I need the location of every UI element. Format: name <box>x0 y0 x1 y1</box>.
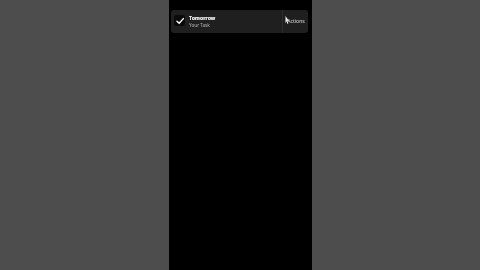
button[interactable]: Mark task complete <box>174 15 185 26</box>
staticText: Actions <box>287 18 305 25</box>
staticText: Your Task <box>189 22 210 28</box>
button[interactable]: Mark task complete <box>171 10 308 33</box>
button[interactable]: Actions <box>283 10 308 33</box>
staticText: Tomorrow <box>189 14 216 21</box>
